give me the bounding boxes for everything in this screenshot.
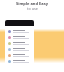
button[interactable]	[5, 58, 34, 64]
button[interactable]	[5, 46, 34, 52]
staticText: to use	[27, 6, 38, 11]
button[interactable]	[5, 52, 34, 58]
button[interactable]	[5, 40, 34, 46]
button[interactable]	[5, 28, 34, 34]
button[interactable]	[5, 34, 34, 40]
staticText: Simple and Easy	[16, 1, 48, 6]
